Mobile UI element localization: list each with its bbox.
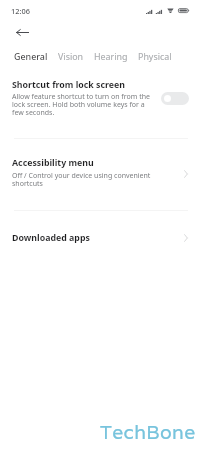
staticText: Off / Control your device using convenie…: [12, 172, 155, 188]
staticText: Physical: [138, 50, 172, 62]
button[interactable]: Physical: [135, 47, 175, 65]
button[interactable]: Shortcut from lock screen: [0, 70, 202, 137]
button[interactable]: Vision: [55, 47, 87, 65]
button[interactable]: Shortcut from lock screen toggle: [161, 92, 189, 105]
button[interactable]: General: [11, 47, 51, 65]
button[interactable]: Accessibility menu: [0, 139, 202, 210]
staticText: Shortcut from lock screen: [12, 79, 126, 91]
staticText: TechBone: [100, 419, 196, 444]
button[interactable]: Downloaded apps: [0, 211, 202, 263]
staticText: Hearing: [94, 50, 128, 62]
staticText: Downloaded apps: [12, 232, 184, 244]
staticText: Accessibility menu: [12, 157, 94, 169]
staticText: General: [14, 50, 48, 62]
staticText: Vision: [58, 50, 84, 62]
button[interactable]: Back: [8, 22, 37, 42]
button[interactable]: Hearing: [91, 47, 131, 65]
staticText: 12:06: [11, 6, 30, 16]
staticText: Allow feature shortcut to turn on from t…: [12, 93, 152, 117]
